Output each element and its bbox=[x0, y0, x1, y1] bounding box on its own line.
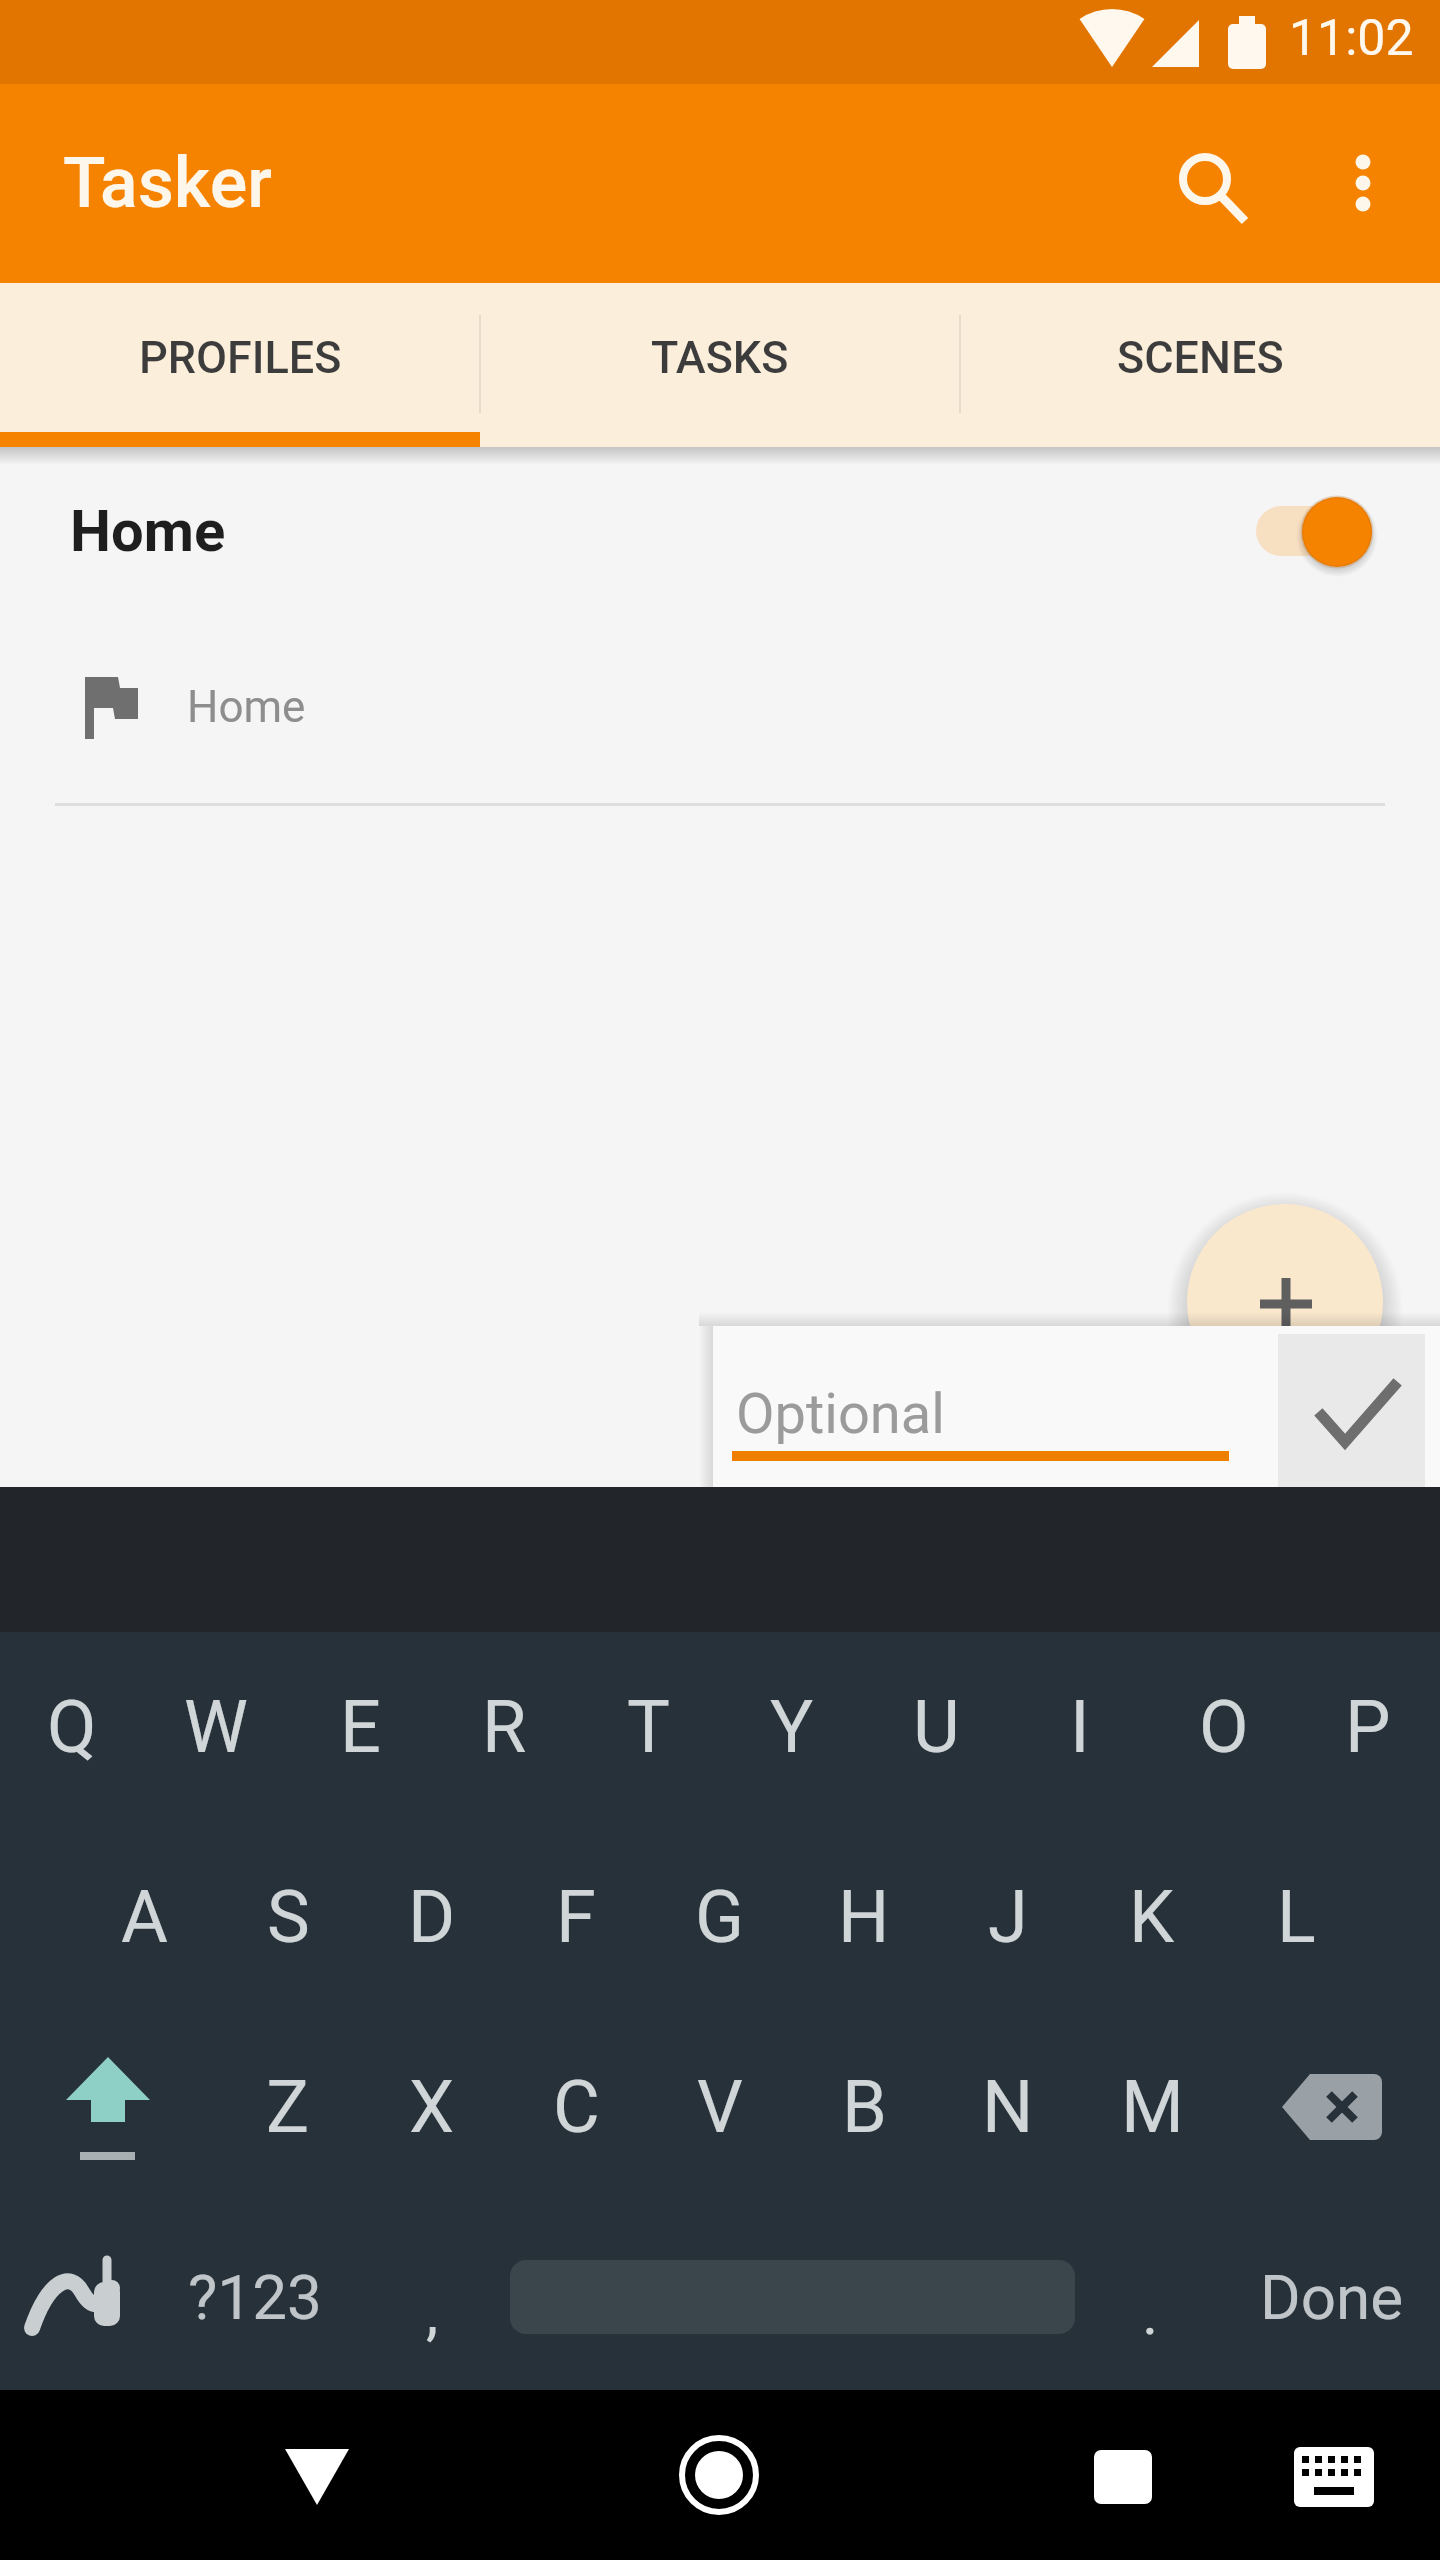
button[interactable] bbox=[1137, 113, 1277, 253]
staticText: O bbox=[1199, 1685, 1249, 1769]
button[interactable] bbox=[1303, 113, 1423, 253]
staticText: K bbox=[1129, 1875, 1175, 1959]
staticText: PROFILES bbox=[139, 331, 342, 384]
staticText: L bbox=[1277, 1875, 1316, 1959]
staticText: J bbox=[988, 1875, 1028, 1959]
staticText: F bbox=[556, 1875, 596, 1959]
staticText: H bbox=[838, 1875, 890, 1959]
staticText: Tasker bbox=[63, 142, 272, 224]
button[interactable]: SCENES bbox=[960, 283, 1440, 431]
staticText: SCENES bbox=[1117, 331, 1284, 384]
staticText: E bbox=[340, 1685, 381, 1769]
button[interactable] bbox=[1256, 506, 1372, 556]
staticText: D bbox=[408, 1875, 456, 1959]
staticText: Optional bbox=[736, 1381, 945, 1447]
button[interactable]: PROFILES bbox=[0, 283, 480, 431]
staticText: TASKS bbox=[651, 331, 789, 384]
button[interactable] bbox=[247, 2407, 387, 2547]
button[interactable] bbox=[1278, 1334, 1425, 1487]
staticText: Done bbox=[1260, 2261, 1404, 2334]
staticText: A bbox=[121, 1875, 168, 1959]
staticText: S bbox=[267, 1875, 310, 1959]
staticText: 11:02 bbox=[1289, 9, 1414, 68]
staticText: U bbox=[913, 1685, 960, 1769]
staticText: Home bbox=[70, 497, 226, 565]
staticText: N bbox=[982, 2065, 1034, 2149]
staticText: G bbox=[695, 1875, 745, 1959]
staticText: Y bbox=[770, 1685, 814, 1769]
staticText: T bbox=[627, 1685, 670, 1769]
staticText: P bbox=[1345, 1685, 1391, 1769]
button[interactable]: Home bbox=[0, 645, 1440, 769]
staticText: C bbox=[553, 2065, 600, 2149]
staticText: , bbox=[426, 2276, 439, 2349]
button[interactable] bbox=[1053, 2407, 1193, 2547]
staticText: . bbox=[1142, 2276, 1159, 2349]
button[interactable] bbox=[1264, 2407, 1404, 2547]
button[interactable]: TASKS bbox=[480, 283, 960, 431]
staticText: ?123 bbox=[188, 2261, 322, 2334]
staticText: B bbox=[842, 2065, 887, 2149]
button[interactable] bbox=[1187, 1204, 1383, 1400]
staticText: Z bbox=[266, 2065, 310, 2149]
staticText: M bbox=[1121, 2065, 1184, 2149]
staticText: Home bbox=[187, 681, 306, 733]
staticText: V bbox=[697, 2065, 743, 2149]
staticText: I bbox=[1070, 1685, 1090, 1769]
button[interactable] bbox=[649, 2405, 789, 2545]
staticText: Q bbox=[47, 1685, 97, 1769]
staticText: W bbox=[184, 1685, 248, 1769]
staticText: R bbox=[482, 1685, 527, 1769]
staticText: X bbox=[409, 2065, 455, 2149]
